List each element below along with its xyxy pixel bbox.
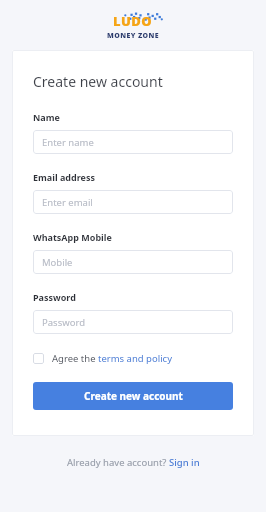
button[interactable]: Enter email [33,190,233,214]
staticText: Mobile [42,256,73,269]
button[interactable]: Create new account [33,382,233,410]
staticText: MONEY ZONE [107,31,159,40]
button[interactable]: Sign in [169,456,200,469]
staticText: Sign in [169,456,200,469]
staticText: Password [42,316,85,329]
staticText: WhatsApp Mobile [33,231,112,243]
button[interactable]: Enter name [33,130,233,154]
staticText: Enter name [42,136,94,149]
staticText: Email address [33,171,95,183]
button[interactable]: Agree the terms and policy [33,352,233,365]
staticText: Enter email [42,196,93,209]
staticText: Create new account [33,72,163,91]
staticText: LUDO [113,12,153,30]
staticText: Create new account [84,389,183,403]
staticText: Name [33,111,60,123]
staticText: Password [33,291,76,303]
staticText: Already have account? [67,456,169,469]
button[interactable]: Mobile [33,250,233,274]
button[interactable]: Password [33,310,233,334]
staticText: Agree the terms and policy [52,352,172,365]
